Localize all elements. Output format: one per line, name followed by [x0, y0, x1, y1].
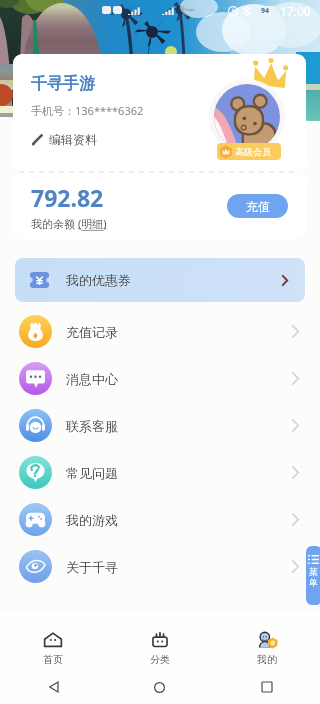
staticText: 分类	[150, 653, 170, 666]
button[interactable]: 我的游戏	[0, 496, 320, 543]
button[interactable]: 菜单	[306, 546, 320, 605]
staticText: 编辑资料	[49, 132, 97, 147]
button[interactable]: 编辑资料	[31, 132, 97, 147]
button[interactable]: 消息中心	[0, 355, 320, 402]
staticText: 关于千寻	[66, 559, 118, 575]
button[interactable]: Home	[106, 670, 213, 704]
staticText: 充值记录	[66, 324, 118, 340]
button[interactable]: 首页	[0, 612, 106, 670]
staticText: 我的游戏	[66, 512, 118, 528]
button[interactable]: 充值	[227, 194, 288, 218]
staticText: 联系客服	[66, 418, 118, 434]
staticText: 我的优惠券	[66, 272, 131, 288]
staticText: 我的	[257, 653, 277, 666]
button[interactable]: 分类	[106, 612, 213, 670]
staticText: 我的余额	[31, 216, 78, 231]
staticText: 单	[309, 577, 318, 588]
staticText: 高级会员	[235, 146, 271, 157]
button[interactable]: 我的	[213, 612, 320, 670]
button[interactable]: 关于千寻	[0, 543, 320, 590]
staticText: 首页	[43, 653, 63, 666]
button[interactable]: 常见问题	[0, 449, 320, 496]
staticText: 94	[261, 6, 270, 16]
staticText: 菜	[309, 566, 318, 577]
staticText: 充值	[246, 199, 270, 214]
button[interactable]: 我的余额	[31, 216, 107, 231]
button[interactable]: 充值记录	[0, 308, 320, 355]
staticText: (明细)	[78, 216, 107, 231]
button[interactable]: 我的优惠券	[15, 258, 305, 302]
staticText: 千寻手游	[31, 74, 95, 94]
staticText: 手机号：136****6362	[31, 103, 144, 118]
staticText: 792.82	[31, 182, 104, 213]
button[interactable]: Back	[0, 670, 106, 704]
button[interactable]: Recents	[213, 670, 320, 704]
staticText: 消息中心	[66, 371, 118, 387]
button[interactable]: 联系客服	[0, 402, 320, 449]
staticText: 常见问题	[66, 465, 118, 481]
staticText: 17:00	[280, 3, 311, 19]
